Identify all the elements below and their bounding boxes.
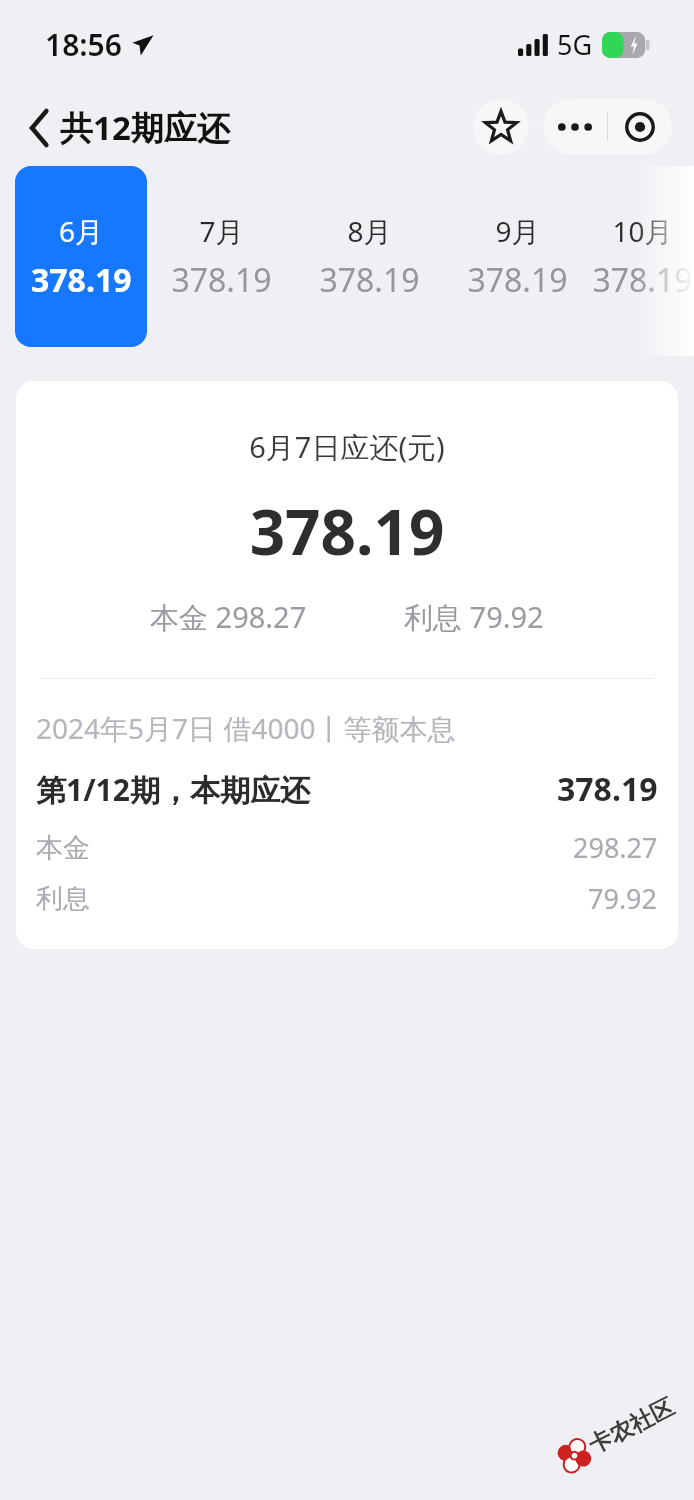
staticText: 7月 <box>199 212 244 250</box>
staticText: 2024年5月7日 借4000丨等额本息 <box>36 709 456 747</box>
staticText: 利息 <box>36 882 90 916</box>
staticText: 79.92 <box>588 880 658 917</box>
button[interactable]: 9月 <box>443 166 591 347</box>
staticText: 利息 79.92 <box>404 597 544 637</box>
button[interactable]: 共12期应还 <box>24 101 236 154</box>
staticText: 378.19 <box>171 258 272 302</box>
staticText: 本金 298.27 <box>150 597 307 637</box>
staticText: 378.19 <box>467 258 568 302</box>
staticText: 6月7日应还(元) <box>16 427 678 467</box>
staticText: 本金 <box>36 831 90 865</box>
staticText: 6月 <box>59 212 104 250</box>
staticText: 第1/12期，本期应还 <box>36 769 310 810</box>
staticText: 5G <box>557 26 593 63</box>
staticText: 共12期应还 <box>60 105 230 150</box>
button[interactable]: More options <box>543 99 607 155</box>
button[interactable]: Close <box>608 99 672 155</box>
staticText: 8月 <box>347 212 392 250</box>
staticText: 298.27 <box>573 829 658 866</box>
staticText: 卡农社区 <box>584 1392 679 1460</box>
button[interactable]: 6月 <box>15 166 147 347</box>
staticText: 378.19 <box>16 489 678 573</box>
button[interactable]: 10月 <box>591 166 694 347</box>
button[interactable]: 7月 <box>147 166 295 347</box>
staticText: 9月 <box>495 212 540 250</box>
staticText: 378.19 <box>557 767 658 811</box>
button[interactable]: 8月 <box>295 166 443 347</box>
staticText: 378.19 <box>319 258 420 302</box>
staticText: 10月 <box>612 212 673 250</box>
staticText: 378.19 <box>592 258 693 302</box>
staticText: 378.19 <box>31 258 132 302</box>
staticText: 18:56 <box>45 24 122 65</box>
button[interactable]: Favorite <box>473 99 529 155</box>
